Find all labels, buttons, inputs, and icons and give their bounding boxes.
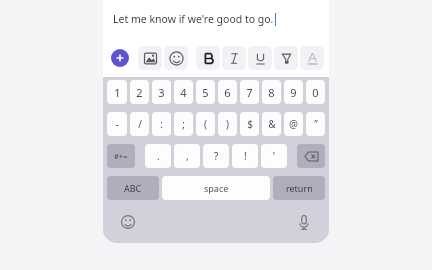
button[interactable]: #+=	[107, 144, 135, 168]
button[interactable]: ,	[174, 144, 200, 168]
button[interactable]: Emoji keyboard	[119, 213, 137, 231]
button[interactable]: :	[152, 112, 171, 136]
button[interactable]: Insert emoji	[164, 46, 188, 70]
button[interactable]: 7	[240, 80, 259, 104]
staticText: 2	[136, 85, 143, 100]
staticText: ,	[186, 149, 189, 163]
staticText: 3	[158, 85, 165, 100]
button[interactable]: /	[130, 112, 149, 136]
button[interactable]: Voice input	[295, 213, 313, 231]
button[interactable]: Italic	[222, 46, 246, 70]
button[interactable]: ’	[261, 144, 287, 168]
button[interactable]: return	[273, 176, 325, 200]
button[interactable]: Text color	[300, 46, 324, 70]
button[interactable]: Add attachment	[111, 49, 129, 67]
staticText: &	[268, 117, 276, 131]
button[interactable]: 9	[284, 80, 303, 104]
button[interactable]: Backspace	[297, 144, 325, 168]
staticText: ?	[214, 149, 219, 163]
button[interactable]: )	[218, 112, 237, 136]
staticText: space	[204, 182, 229, 194]
button[interactable]: ;	[174, 112, 193, 136]
button[interactable]: 4	[174, 80, 193, 104]
staticText: 8	[268, 85, 275, 100]
staticText: 6	[224, 85, 231, 100]
staticText: -	[115, 117, 119, 131]
button[interactable]: $	[240, 112, 259, 136]
button[interactable]: (	[196, 112, 215, 136]
button[interactable]: Highlight	[274, 46, 298, 70]
button[interactable]: !	[232, 144, 258, 168]
staticText: $	[247, 117, 253, 131]
button[interactable]: space	[162, 176, 270, 200]
staticText: 5	[202, 85, 209, 100]
staticText: ’	[273, 149, 275, 163]
staticText: ABC	[124, 182, 142, 194]
button[interactable]: 8	[262, 80, 281, 104]
staticText: return	[286, 182, 313, 194]
button[interactable]: @	[284, 112, 303, 136]
button[interactable]: 6	[218, 80, 237, 104]
staticText: .	[157, 149, 160, 163]
staticText: (	[204, 117, 207, 131]
staticText: 4	[180, 85, 187, 100]
staticText: /	[138, 117, 142, 131]
staticText: @	[289, 117, 298, 131]
button[interactable]: 1	[107, 80, 127, 104]
button[interactable]: &	[262, 112, 281, 136]
button[interactable]: Underline	[248, 46, 272, 70]
button[interactable]: 5	[196, 80, 215, 104]
button[interactable]: ?	[203, 144, 229, 168]
staticText: ”	[314, 117, 318, 131]
staticText: 7	[246, 85, 253, 100]
staticText: #+=	[114, 151, 128, 161]
button[interactable]: 0	[306, 80, 325, 104]
button[interactable]: .	[145, 144, 171, 168]
staticText: 9	[290, 85, 297, 100]
staticText: 1	[114, 85, 121, 100]
button[interactable]: Bold	[196, 46, 220, 70]
staticText: !	[244, 149, 247, 163]
staticText: )	[226, 117, 229, 131]
staticText: ;	[182, 117, 185, 131]
button[interactable]: 2	[130, 80, 149, 104]
button[interactable]: Let me know if we're good to go.	[103, 0, 329, 38]
button[interactable]: Insert image	[138, 46, 162, 70]
button[interactable]: 3	[152, 80, 171, 104]
button[interactable]: ”	[306, 112, 325, 136]
staticText: 0	[312, 85, 319, 100]
staticText: Let me know if we're good to go.	[113, 12, 274, 26]
button[interactable]: ABC	[107, 176, 159, 200]
button[interactable]: -	[107, 112, 127, 136]
staticText: :	[160, 117, 163, 131]
